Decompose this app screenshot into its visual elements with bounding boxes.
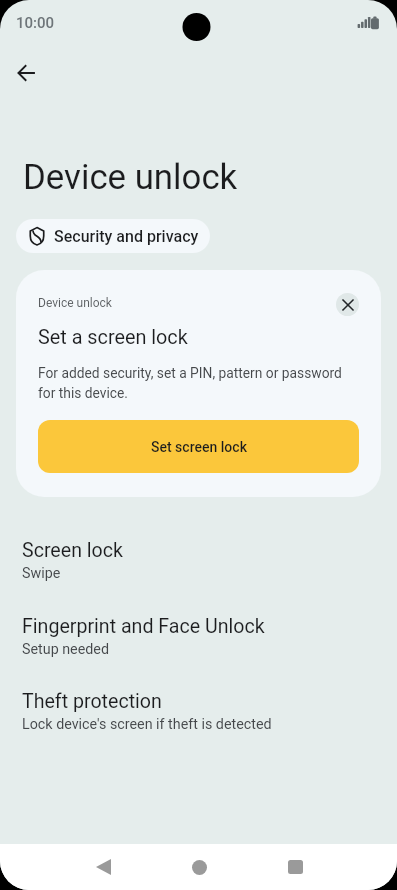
button[interactable]: Dismiss	[336, 293, 359, 316]
button[interactable]: Fingerprint and Face Unlock	[0, 603, 397, 673]
staticText: For added security, set a PIN, pattern o…	[38, 365, 352, 401]
staticText: 10:00	[16, 14, 55, 32]
staticText: Theft protection	[22, 690, 162, 713]
staticText: Set a screen lock	[38, 326, 188, 349]
button[interactable]: Screen lock	[0, 527, 397, 597]
staticText: Swipe	[22, 565, 61, 582]
button[interactable]: Set screen lock	[38, 420, 359, 473]
staticText: Security and privacy	[54, 227, 199, 246]
button[interactable]: Back	[55, 844, 151, 890]
staticText: Lock device's screen if theft is detecte…	[22, 716, 272, 733]
staticText: Fingerprint and Face Unlock	[22, 615, 265, 638]
staticText: Setup needed	[22, 641, 109, 658]
button[interactable]: Recent apps	[247, 844, 343, 890]
button[interactable]: Theft protection	[0, 678, 397, 748]
button[interactable]: Security and privacy	[16, 219, 210, 253]
button[interactable]: Back	[5, 51, 49, 95]
staticText: Screen lock	[22, 539, 123, 562]
staticText: Device unlock	[38, 296, 112, 310]
staticText: Device unlock	[23, 157, 238, 198]
staticText: Set screen lock	[151, 439, 247, 455]
button[interactable]: Home	[151, 844, 247, 890]
